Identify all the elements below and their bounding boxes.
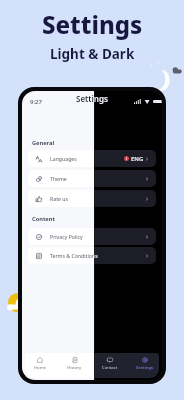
button[interactable]: History	[57, 351, 92, 376]
staticText: General	[32, 139, 55, 147]
staticText: Terms & Conditions	[50, 252, 98, 259]
staticText: 9:27	[30, 98, 42, 106]
staticText: Rate us	[50, 195, 68, 202]
button[interactable]: Languages	[28, 150, 156, 167]
button[interactable]: Settings	[127, 351, 162, 376]
staticText: Settings	[136, 365, 154, 371]
staticText: Settings	[136, 365, 154, 371]
staticText: Privacy Policy	[50, 233, 83, 240]
button[interactable]: Theme	[28, 170, 156, 187]
staticText: Contact	[102, 365, 118, 371]
staticText: ENG	[131, 155, 144, 163]
staticText: 9:27	[30, 98, 42, 106]
staticText: Rate us	[50, 195, 68, 202]
staticText: ENG	[131, 155, 144, 163]
button[interactable]: Privacy Policy	[28, 228, 156, 245]
staticText: Theme	[50, 175, 67, 182]
staticText: Terms & Conditions	[50, 252, 98, 259]
button[interactable]: Terms & Conditions	[28, 247, 156, 264]
staticText: Languages	[50, 155, 77, 162]
staticText: Content	[32, 215, 55, 223]
staticText: History	[67, 365, 82, 371]
button[interactable]: Rate us	[28, 190, 156, 207]
staticText: Settings	[76, 93, 108, 104]
button[interactable]: Languages	[28, 150, 156, 167]
staticText: Settings	[76, 93, 108, 104]
staticText: History	[67, 365, 82, 371]
button[interactable]: Privacy Policy	[28, 228, 156, 245]
staticText: Contact	[102, 365, 118, 371]
staticText: Home	[34, 365, 46, 371]
staticText: Privacy Policy	[50, 233, 83, 240]
button[interactable]: Home	[22, 351, 57, 376]
button[interactable]: History	[57, 351, 92, 376]
button[interactable]: Contact	[92, 351, 127, 376]
staticText: Content	[32, 215, 55, 223]
staticText: Light & Dark	[50, 45, 135, 63]
button[interactable]: Theme	[28, 170, 156, 187]
staticText: Languages	[50, 155, 77, 162]
button[interactable]: Terms & Conditions	[28, 247, 156, 264]
button[interactable]: Contact	[92, 351, 127, 376]
button[interactable]: Rate us	[28, 190, 156, 207]
staticText: Theme	[50, 175, 67, 182]
staticText: Home	[34, 365, 46, 371]
staticText: General	[32, 139, 55, 147]
button[interactable]: Home	[22, 351, 57, 376]
staticText: Settings	[42, 8, 143, 41]
button[interactable]: Settings	[127, 351, 162, 376]
